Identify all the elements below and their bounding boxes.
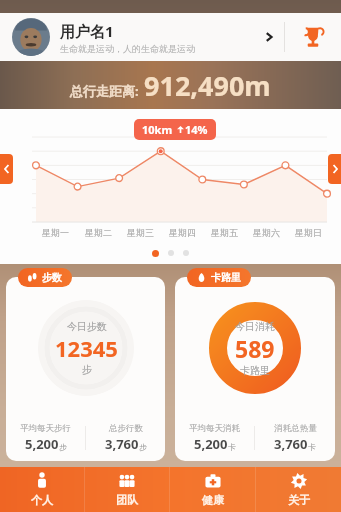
staticText: 平均每天消耗 bbox=[189, 423, 240, 434]
staticText: 912,490m bbox=[144, 67, 271, 104]
button[interactable]: 团队 bbox=[85, 467, 169, 512]
staticText: 今日消耗 bbox=[235, 320, 275, 333]
staticText: 总行走距离: bbox=[70, 82, 139, 100]
staticText: 平均每天步行 bbox=[20, 423, 71, 434]
staticText: 星期五 bbox=[211, 227, 238, 238]
staticText: 星期三 bbox=[127, 227, 154, 238]
staticText: 星期日 bbox=[295, 227, 322, 238]
staticText: 个人 bbox=[31, 493, 53, 507]
button[interactable]: Page 2 bbox=[168, 250, 174, 256]
staticText: 团队 bbox=[116, 493, 138, 507]
staticText: 健康 bbox=[202, 493, 224, 507]
button[interactable]: 健康 bbox=[170, 467, 255, 512]
button[interactable]: Achievements bbox=[285, 13, 341, 61]
staticText: 12345 bbox=[55, 333, 118, 363]
staticText: 用户名1 bbox=[60, 21, 114, 41]
button[interactable]: 关于 bbox=[256, 467, 341, 512]
button[interactable]: 用户名1 bbox=[0, 13, 284, 61]
staticText: 589 bbox=[235, 333, 275, 364]
staticText: 3,760 bbox=[105, 435, 139, 453]
button[interactable]: 个人 bbox=[0, 467, 84, 512]
staticText: 卡路里 bbox=[240, 364, 270, 377]
staticText: 5,200 bbox=[194, 435, 228, 453]
staticText: 星期一 bbox=[42, 227, 69, 238]
staticText: 今日步数 bbox=[67, 320, 107, 333]
button[interactable]: Page 1 bbox=[152, 250, 159, 257]
staticText: 卡 bbox=[228, 442, 236, 452]
staticText: 星期四 bbox=[169, 227, 196, 238]
staticText: 14% bbox=[185, 122, 208, 137]
staticText: 消耗总热量 bbox=[274, 423, 317, 434]
staticText: 步 bbox=[59, 442, 67, 452]
staticText: 步数 bbox=[42, 271, 62, 284]
staticText: 步 bbox=[139, 442, 147, 452]
button[interactable]: 今日消耗 bbox=[175, 277, 335, 461]
staticText: 总步行数 bbox=[109, 423, 143, 434]
staticText: 3,760 bbox=[274, 435, 308, 453]
staticText: 星期六 bbox=[253, 227, 280, 238]
staticText: 步 bbox=[82, 363, 92, 376]
button[interactable]: 卡路里 bbox=[187, 268, 251, 287]
button[interactable]: Page 3 bbox=[183, 250, 189, 256]
staticText: 5,200 bbox=[25, 435, 59, 453]
staticText: 卡路里 bbox=[211, 271, 241, 284]
button[interactable]: 今日步数 bbox=[6, 277, 165, 461]
staticText: 关于 bbox=[288, 493, 310, 507]
staticText: 卡 bbox=[308, 442, 316, 452]
staticText: 10km bbox=[142, 122, 173, 137]
button[interactable]: Previous week bbox=[0, 154, 13, 184]
staticText: 星期二 bbox=[85, 227, 112, 238]
staticText: 生命就是运动，人的生命就是运动 bbox=[60, 43, 195, 54]
button[interactable]: 步数 bbox=[18, 268, 72, 287]
button[interactable]: Next week bbox=[328, 154, 341, 184]
